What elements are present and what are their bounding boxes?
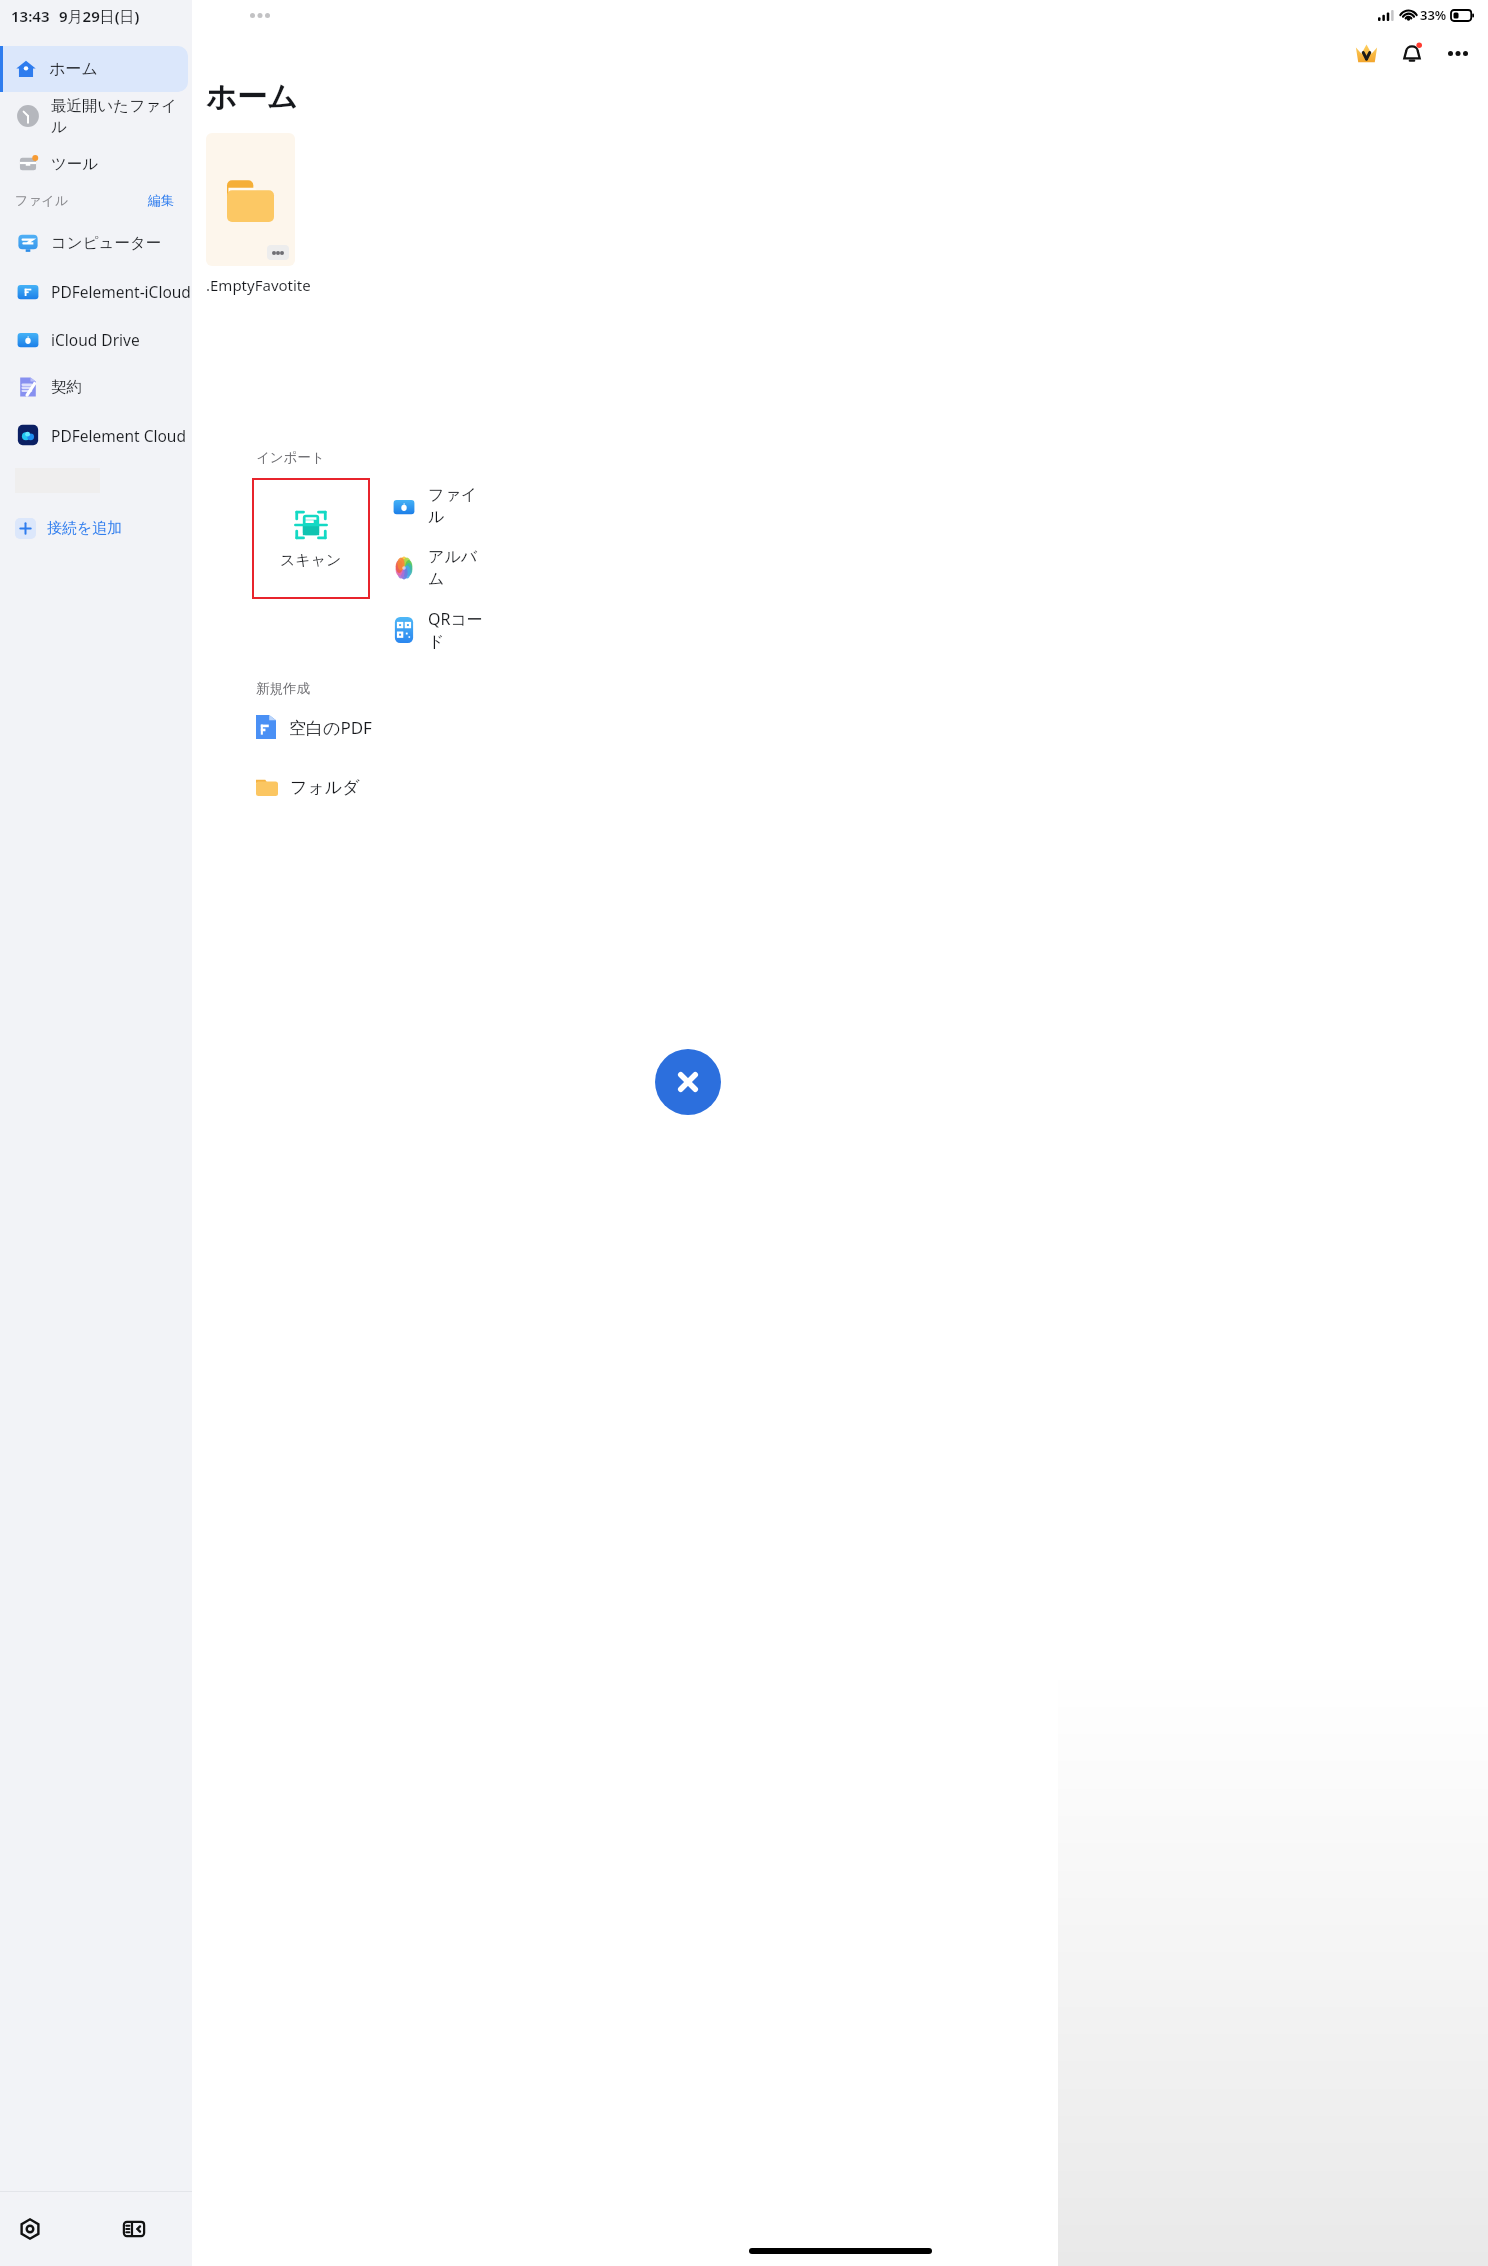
button[interactable]: ファイル [377, 478, 492, 534]
button[interactable]: iCloud Drive [0, 315, 192, 363]
button[interactable]: コンピューター [0, 219, 192, 267]
button[interactable]: Collapse sidebar [116, 2211, 152, 2247]
staticText: 9月29日(日) [59, 6, 140, 26]
staticText: コンピューター [51, 233, 162, 253]
staticText: 13:43 [11, 6, 50, 26]
button[interactable]: 空白のPDF [242, 697, 502, 757]
button[interactable]: Premium [1348, 35, 1384, 71]
staticText: ファイル [15, 192, 69, 208]
button[interactable]: フォルダ [242, 757, 502, 817]
staticText: インポート [256, 449, 325, 466]
button[interactable]: スキャン [254, 480, 368, 597]
button[interactable]: ホーム [0, 46, 192, 92]
button[interactable]: Item options [267, 245, 289, 260]
staticText: 契約 [51, 377, 82, 397]
staticText: .EmptyFavotite [206, 275, 311, 295]
button[interactable]: PDFelement-iCloud [0, 267, 192, 315]
button[interactable]: QRコード [377, 602, 492, 658]
staticText: ホーム [206, 78, 298, 116]
button[interactable]: ツール [0, 140, 192, 188]
staticText: 33% [1420, 6, 1447, 24]
staticText: QRコード [428, 608, 492, 652]
button[interactable]: 最近開いたファイル [0, 92, 192, 140]
staticText: ツール [51, 154, 99, 174]
button[interactable]: 編集 [146, 190, 176, 210]
staticText: アルバム [428, 547, 492, 589]
button[interactable]: Notifications [1394, 35, 1430, 71]
button[interactable]: Settings [12, 2211, 48, 2247]
button[interactable]: Item options [206, 133, 295, 266]
staticText: ホーム [49, 59, 98, 79]
button[interactable]: 接続を追加 [0, 507, 192, 549]
button[interactable]: アルバム [377, 540, 492, 596]
button[interactable]: 契約 [0, 363, 192, 411]
staticText: 最近開いたファイル [51, 96, 192, 136]
button[interactable]: PDFelement Cloud [0, 411, 192, 459]
staticText: PDFelement-iCloud [51, 281, 191, 302]
staticText: ファイル [428, 485, 492, 527]
staticText: フォルダ [290, 777, 360, 798]
staticText: 接続を追加 [47, 519, 123, 538]
staticText: iCloud Drive [51, 329, 140, 350]
button[interactable]: Close [655, 1049, 721, 1115]
staticText: 編集 [148, 192, 174, 208]
staticText: PDFelement Cloud [51, 425, 186, 446]
staticText: 空白のPDF [289, 716, 372, 739]
staticText: 新規作成 [256, 680, 310, 697]
staticText: スキャン [280, 551, 342, 570]
button[interactable]: More options [1440, 35, 1476, 71]
